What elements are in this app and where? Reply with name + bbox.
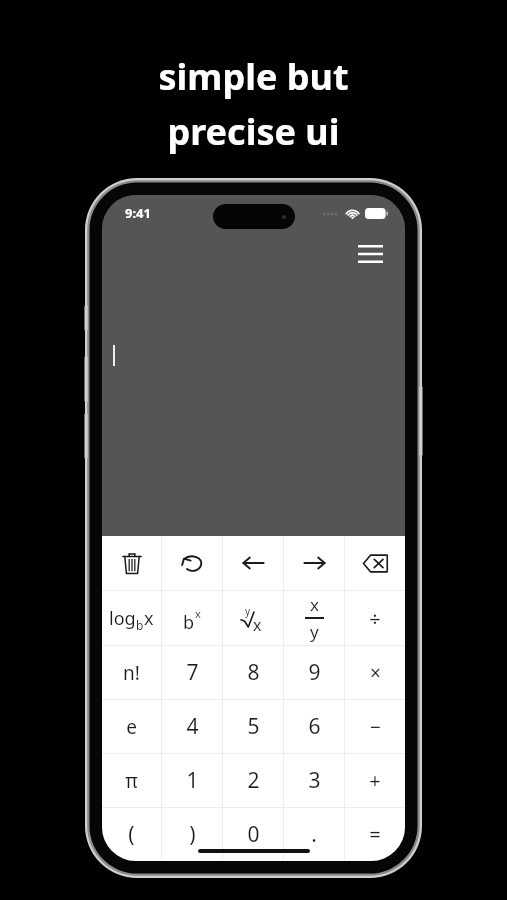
button[interactable]: 1 (162, 754, 222, 807)
staticText: n! (123, 660, 140, 686)
button[interactable]: × (345, 646, 405, 699)
button[interactable]: Undo (162, 536, 222, 590)
button[interactable]: ( (102, 808, 161, 861)
button[interactable]: − (345, 700, 405, 753)
staticText: 5 (247, 712, 260, 741)
staticText: π (125, 768, 138, 794)
button[interactable]: 5 (223, 700, 283, 753)
button[interactable]: 2 (223, 754, 283, 807)
staticText: 9:41 (125, 204, 151, 222)
button[interactable]: ) (162, 808, 222, 861)
button[interactable]: 0 (223, 808, 283, 861)
staticText: 4 (186, 712, 199, 741)
staticText: 1 (186, 766, 199, 795)
staticText: x (310, 593, 319, 616)
staticText: 6 (308, 712, 321, 741)
staticText: precise ui (167, 107, 340, 156)
button[interactable]: ÷ (345, 591, 405, 645)
button[interactable]: y-th root of x (223, 591, 283, 645)
button[interactable]: Backspace (345, 536, 405, 590)
button[interactable]: Move left (223, 536, 283, 590)
button[interactable]: Menu (353, 237, 387, 271)
staticText: × (370, 660, 381, 686)
staticText: − (370, 714, 381, 740)
staticText: x (144, 606, 154, 631)
staticText: . (311, 820, 317, 849)
staticText: ( (128, 820, 135, 849)
staticText: 8 (247, 658, 260, 687)
button[interactable]: log base b of x (102, 591, 161, 645)
staticText: 2 (247, 766, 260, 795)
button[interactable]: . (284, 808, 344, 861)
staticText: ) (189, 820, 196, 849)
button[interactable]: b to the power x (162, 591, 222, 645)
button[interactable]: 9 (284, 646, 344, 699)
button[interactable]: π (102, 754, 161, 807)
staticText: e (126, 714, 137, 740)
staticText: y (310, 620, 319, 643)
button[interactable]: e (102, 700, 161, 753)
staticText: 7 (186, 658, 199, 687)
button[interactable]: 8 (223, 646, 283, 699)
staticText: ÷ (369, 605, 381, 632)
button[interactable]: = (345, 808, 405, 861)
staticText: 3 (308, 766, 321, 795)
staticText: x (195, 606, 201, 621)
staticText: b (183, 610, 195, 635)
button[interactable]: 4 (162, 700, 222, 753)
staticText: 0 (247, 820, 260, 849)
button[interactable]: n! (102, 646, 161, 699)
staticText: + (369, 767, 381, 794)
staticText: y (245, 604, 251, 618)
staticText: simple but (158, 52, 349, 101)
staticText: b (136, 617, 144, 633)
button[interactable]: Move right (284, 536, 344, 590)
button[interactable]: Clear (102, 536, 161, 590)
staticText: x (253, 614, 262, 636)
staticText: = (369, 821, 381, 848)
button[interactable]: 7 (162, 646, 222, 699)
staticText: 9 (308, 658, 321, 687)
staticText: log (109, 606, 136, 631)
button[interactable]: 6 (284, 700, 344, 753)
button[interactable]: fraction x over y (284, 591, 344, 645)
button[interactable]: + (345, 754, 405, 807)
button[interactable]: 3 (284, 754, 344, 807)
